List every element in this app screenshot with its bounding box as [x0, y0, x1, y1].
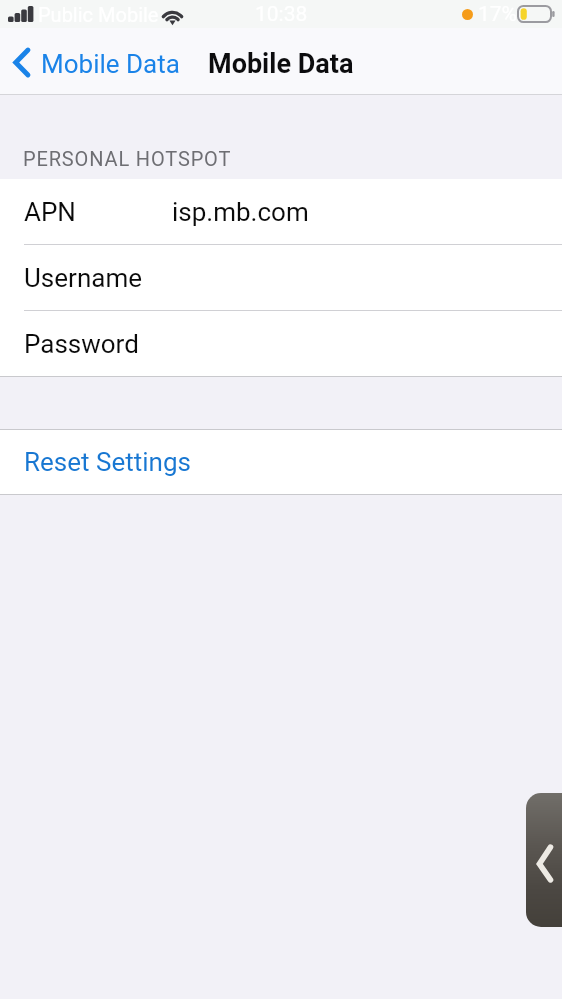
- button[interactable]: Password: [0, 311, 562, 376]
- staticText: Reset Settings: [24, 447, 191, 477]
- staticText: Username: [24, 263, 142, 293]
- button[interactable]: Back: [526, 793, 562, 927]
- staticText: Mobile Data: [208, 48, 354, 80]
- staticText: Mobile Data: [41, 49, 180, 79]
- button[interactable]: APN: [0, 179, 562, 244]
- staticText: Password: [24, 329, 139, 359]
- staticText: APN: [24, 197, 76, 227]
- staticText: 17%: [478, 2, 517, 27]
- staticText: isp.mb.com: [172, 197, 309, 227]
- staticText: PERSONAL HOTSPOT: [23, 147, 232, 170]
- button[interactable]: Mobile Data: [0, 49, 190, 79]
- button[interactable]: Username: [0, 245, 562, 310]
- staticText: 10:38: [255, 2, 308, 27]
- button[interactable]: Reset Settings: [0, 430, 562, 494]
- staticText: Public Mobile: [38, 3, 159, 26]
